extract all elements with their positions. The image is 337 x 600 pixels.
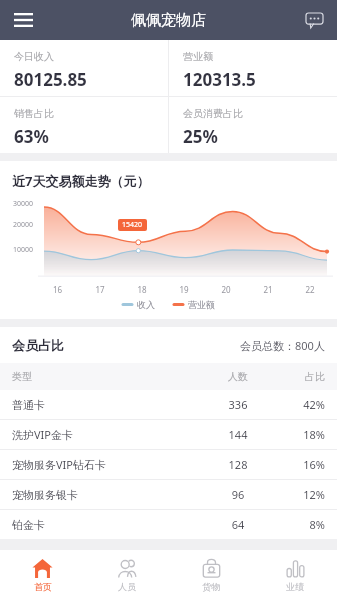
button[interactable]: 首页 <box>0 550 85 600</box>
staticText: 96 <box>199 487 277 502</box>
staticText: 25% <box>183 125 218 148</box>
staticText: 80125.85 <box>14 68 87 91</box>
staticText: 营业额 <box>188 299 215 310</box>
staticText: 17 <box>79 284 121 295</box>
button[interactable]: 人员 <box>85 550 169 600</box>
button[interactable]: 销售占比 <box>0 97 168 153</box>
staticText: 占比 <box>277 370 325 383</box>
staticText: 会员消费占比 <box>183 107 243 120</box>
staticText: 近7天交易额走势（元） <box>12 172 150 190</box>
staticText: 人数 <box>199 370 277 383</box>
staticText: 营业额 <box>183 50 213 63</box>
staticText: 18 <box>121 284 163 295</box>
staticText: 21 <box>247 284 289 295</box>
staticText: 货物 <box>202 581 220 592</box>
staticText: 10000 <box>13 245 34 255</box>
staticText: 22 <box>289 284 331 295</box>
staticText: 64 <box>199 517 277 532</box>
button[interactable]: 会员消费占比 <box>169 97 337 153</box>
staticText: 类型 <box>12 370 199 383</box>
staticText: 15420 <box>122 220 143 230</box>
staticText: 63% <box>14 125 49 148</box>
staticText: 收入 <box>137 299 155 310</box>
staticText: 20 <box>205 284 247 295</box>
staticText: 128 <box>199 457 277 472</box>
staticText: 首页 <box>34 581 52 592</box>
button[interactable]: Menu <box>7 4 39 36</box>
staticText: 铂金卡 <box>12 518 199 532</box>
staticText: 宠物服务VIP钻石卡 <box>12 457 199 472</box>
button[interactable]: 普通卡 <box>0 390 337 419</box>
staticText: 12% <box>277 487 325 502</box>
staticText: 业绩 <box>286 581 304 592</box>
staticText: 佩佩宠物店 <box>131 11 206 30</box>
button[interactable]: 业绩 <box>253 550 337 600</box>
staticText: 18% <box>277 427 325 442</box>
staticText: 336 <box>199 397 277 412</box>
staticText: 16% <box>277 457 325 472</box>
button[interactable]: 宠物服务银卡 <box>0 480 337 509</box>
staticText: 42% <box>277 397 325 412</box>
staticText: 120313.5 <box>183 68 256 91</box>
button[interactable]: 洗护VIP金卡 <box>0 420 337 449</box>
staticText: 20000 <box>13 220 34 230</box>
staticText: 销售占比 <box>14 107 54 120</box>
staticText: 16 <box>36 284 79 295</box>
button[interactable]: Messages <box>299 5 329 35</box>
staticText: 洗护VIP金卡 <box>12 427 199 442</box>
staticText: 人员 <box>118 581 136 592</box>
button[interactable]: 宠物服务VIP钻石卡 <box>0 450 337 479</box>
button[interactable]: 今日收入 <box>0 40 168 96</box>
staticText: 144 <box>199 427 277 442</box>
button[interactable]: 营业额 <box>169 40 337 96</box>
staticText: 会员总数：800人 <box>240 338 325 353</box>
staticText: 8% <box>277 517 325 532</box>
staticText: 30000 <box>13 199 34 209</box>
staticText: 19 <box>163 284 205 295</box>
staticText: 会员占比 <box>12 337 64 353</box>
button[interactable]: 铂金卡 <box>0 510 337 539</box>
button[interactable]: 货物 <box>169 550 253 600</box>
staticText: 今日收入 <box>14 50 54 63</box>
staticText: 普通卡 <box>12 398 199 412</box>
staticText: 宠物服务银卡 <box>12 488 199 502</box>
